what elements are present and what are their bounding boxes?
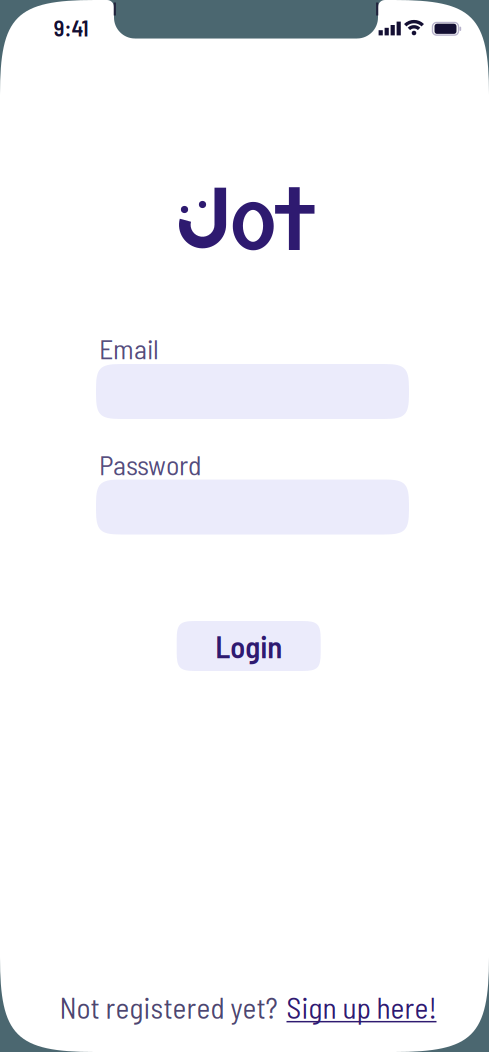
button[interactable]: Login [177,621,321,671]
staticText: 9:41 [53,14,88,41]
staticText: Sign up here! [286,990,436,1024]
button[interactable]: Sign up here! [286,990,436,1024]
staticText: Password [99,448,202,480]
staticText: Not registered yet? [59,990,277,1024]
staticText: Email [99,332,159,364]
staticText: Login [215,628,282,664]
